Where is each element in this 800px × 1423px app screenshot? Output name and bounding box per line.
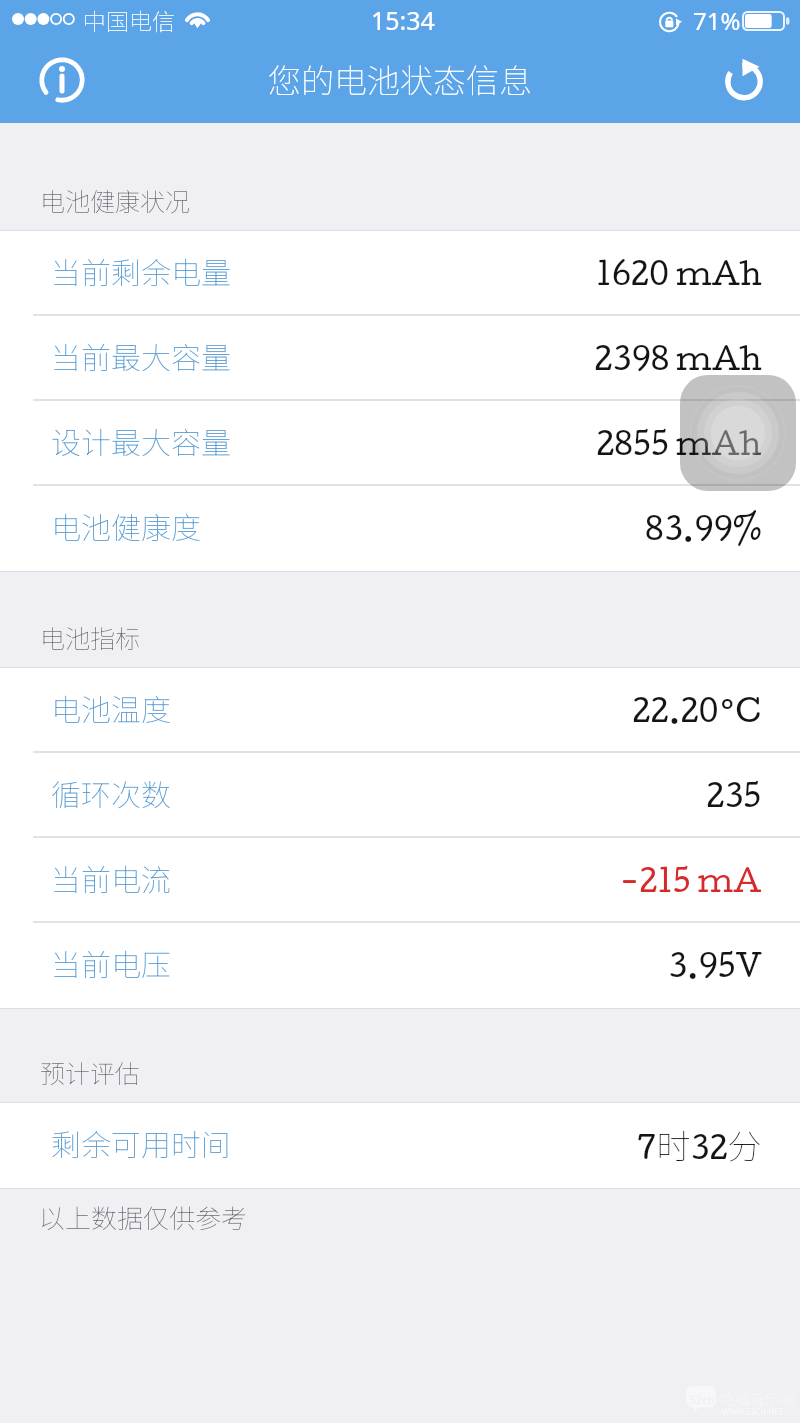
button[interactable]: 设计最大容量 xyxy=(0,401,800,486)
staticText: 设计最大容量 xyxy=(51,419,231,462)
button[interactable]: 剩余可用时间 xyxy=(0,1103,800,1188)
staticText: 当前电流 xyxy=(51,856,171,899)
button[interactable]: 电池温度 xyxy=(0,668,800,753)
staticText: 2398 mAh xyxy=(594,339,762,377)
button[interactable]: 当前剩余电量 xyxy=(0,231,800,316)
staticText: 1620 mAh xyxy=(596,254,762,292)
staticText: 15:34 xyxy=(371,3,435,37)
staticText: 22.20°C xyxy=(632,691,762,729)
staticText: 71% xyxy=(693,4,741,37)
staticText: 83.99% xyxy=(645,509,762,547)
staticText: 电池指标 xyxy=(40,619,141,655)
staticText: 电池健康状况 xyxy=(40,182,191,218)
staticText: 预计评估 xyxy=(40,1054,141,1090)
staticText: 您的电池状态信息 xyxy=(268,55,532,103)
button[interactable]: 电池健康度 xyxy=(0,486,800,571)
staticText: 剩余可用时间 xyxy=(51,1121,231,1164)
button[interactable]: 当前电流 xyxy=(0,838,800,923)
staticText: 当前电压 xyxy=(51,941,171,984)
staticText: 中国电信 xyxy=(83,3,175,36)
button[interactable]: AssistiveTouch xyxy=(680,375,796,491)
staticText: 电池温度 xyxy=(51,686,171,729)
button[interactable]: Info xyxy=(31,49,93,111)
staticText: 循环次数 xyxy=(51,771,171,814)
staticText: 当前剩余电量 xyxy=(51,249,231,292)
button[interactable]: 当前最大容量 xyxy=(0,316,800,401)
staticText: 235 xyxy=(706,776,762,814)
staticText: 电池健康度 xyxy=(51,504,201,547)
staticText: 以上数据仅供参考 xyxy=(39,1198,248,1236)
button[interactable]: Refresh xyxy=(710,50,772,112)
staticText: -215 mA xyxy=(620,861,762,899)
staticText: 当前最大容量 xyxy=(51,334,231,377)
staticText: 7时32分 xyxy=(637,1120,762,1169)
staticText: 3.95V xyxy=(668,946,762,984)
staticText: 2855 mAh xyxy=(596,424,762,462)
button[interactable]: 循环次数 xyxy=(0,753,800,838)
button[interactable]: 当前电压 xyxy=(0,923,800,1008)
